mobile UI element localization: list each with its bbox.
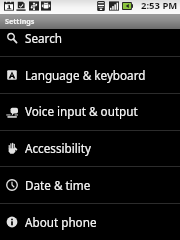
staticText: About phone	[25, 214, 97, 230]
staticText: Date & time	[25, 177, 91, 193]
staticText: Voice input & output	[25, 103, 138, 119]
button[interactable]: Accessibility	[0, 130, 180, 166]
staticText: Settings	[5, 16, 35, 26]
staticText: 2:53 PM	[141, 0, 178, 12]
button[interactable]: Search	[0, 20, 180, 56]
button[interactable]: Language & keyboard	[0, 57, 180, 92]
button[interactable]: About phone	[0, 204, 180, 240]
button[interactable]: Date & time	[0, 167, 180, 203]
button[interactable]: Voice input & output	[0, 93, 180, 129]
staticText: Search	[25, 30, 62, 46]
staticText: Accessibility	[25, 140, 91, 156]
staticText: Language & keyboard	[25, 67, 146, 83]
